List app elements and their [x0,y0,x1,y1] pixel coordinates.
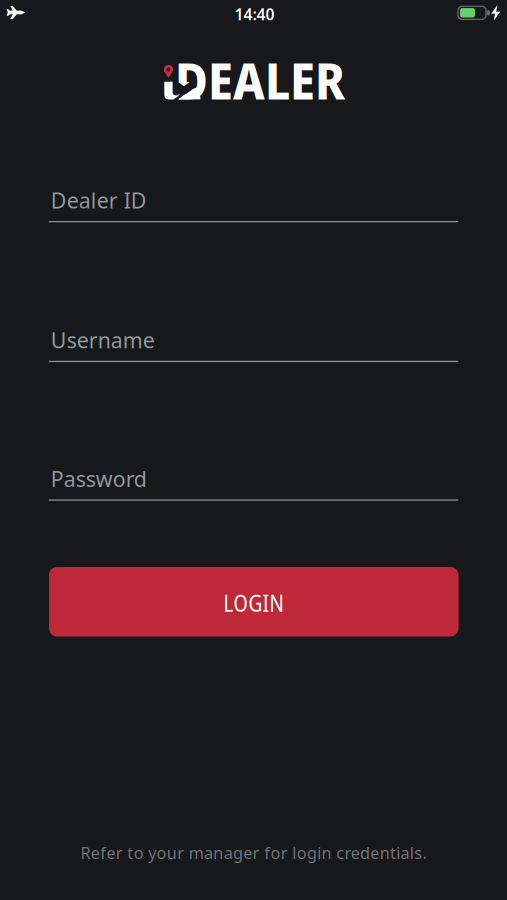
staticText: 14:40 [234,3,274,25]
button[interactable]: Username [49,325,458,362]
staticText: LOGIN [223,587,284,618]
button[interactable]: LOGIN [49,567,458,636]
staticText: DEALER [175,47,345,114]
button[interactable]: Password [49,464,458,501]
staticText: Password [51,464,147,493]
staticText: Refer to your manager for login credenti… [81,842,426,864]
button[interactable]: Dealer ID [49,186,458,222]
staticText: Dealer ID [51,186,147,215]
staticText: Username [51,325,155,355]
